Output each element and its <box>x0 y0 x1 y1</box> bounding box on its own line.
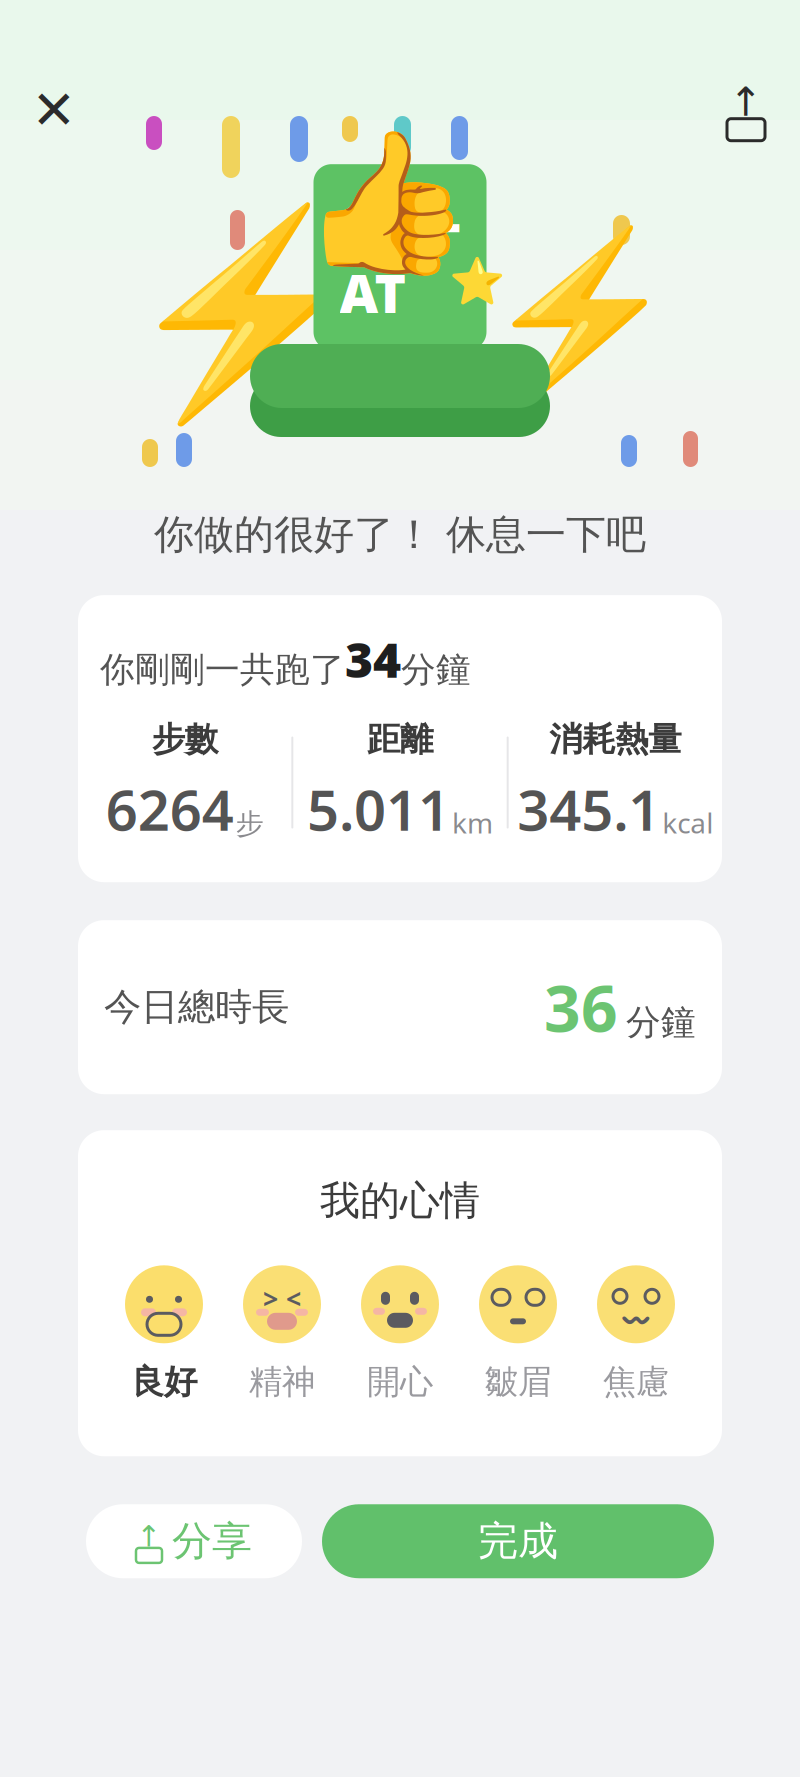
staticText: > <box>263 1281 278 1316</box>
staticText: 焦慮 <box>603 1361 669 1402</box>
staticText: 皺眉 <box>485 1361 551 1402</box>
staticText: 完成 <box>478 1517 558 1566</box>
staticText: 345.1 <box>517 772 660 846</box>
staticText: 距離 <box>367 719 433 760</box>
button[interactable]: > <box>223 1265 341 1402</box>
staticText: 良好 <box>131 1361 197 1402</box>
staticText: 分鐘 <box>626 1001 696 1044</box>
staticText: 〰 <box>619 1305 653 1336</box>
staticText: 精神 <box>249 1361 315 1402</box>
staticText: ↑ <box>729 79 763 125</box>
staticText: km <box>452 804 493 841</box>
staticText: 5.011 <box>307 772 450 846</box>
button[interactable]: 良好 <box>105 1265 223 1402</box>
staticText: 你剛剛一共跑了 <box>100 648 345 691</box>
button[interactable]: 完成 <box>322 1504 714 1578</box>
staticText: ⭐️ <box>449 256 505 308</box>
staticText: 分享 <box>172 1517 252 1566</box>
staticText: ⚡ <box>120 200 369 428</box>
staticText: 分鐘 <box>401 648 471 691</box>
staticText: 👍 <box>300 124 473 282</box>
staticText: ✕ <box>31 80 76 140</box>
staticText: kcal <box>662 804 713 841</box>
staticText: < <box>286 1281 301 1316</box>
staticText: 36 <box>544 965 618 1050</box>
staticText: 開心 <box>367 1361 433 1402</box>
button[interactable]: 皺眉 <box>459 1265 577 1402</box>
staticText: GREAT <box>339 186 460 328</box>
staticText: 步數 <box>152 719 218 760</box>
button[interactable]: ↑ <box>86 1504 302 1578</box>
staticText: ⚡ <box>481 223 680 405</box>
button[interactable]: Share <box>714 78 778 142</box>
staticText: 6264 <box>106 772 234 846</box>
staticText: 34 <box>345 627 401 691</box>
staticText: 今日總時長 <box>104 984 289 1030</box>
staticText: 消耗熱量 <box>549 719 681 760</box>
staticText: 你做的很好了！ 休息一下吧 <box>154 510 646 559</box>
button[interactable]: Close <box>22 78 86 142</box>
staticText: 我的心情 <box>320 1176 480 1225</box>
button[interactable]: 開心 <box>341 1265 459 1402</box>
button[interactable]: 〰 <box>577 1265 695 1402</box>
staticText: ↑ <box>136 1520 161 1553</box>
staticText: 步 <box>236 807 264 841</box>
